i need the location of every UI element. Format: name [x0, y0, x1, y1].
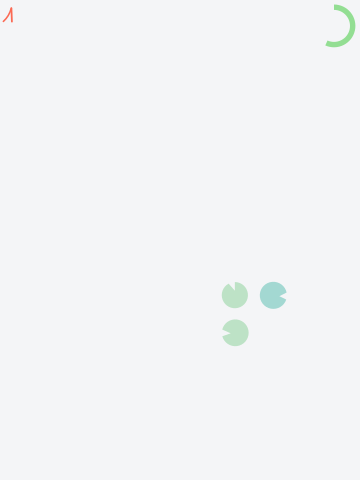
button[interactable]: Progress	[0, 0, 360, 480]
button[interactable]: Activity one	[0, 0, 360, 480]
button[interactable]: Activity two	[0, 0, 360, 480]
button[interactable]: Activity three	[0, 0, 360, 480]
